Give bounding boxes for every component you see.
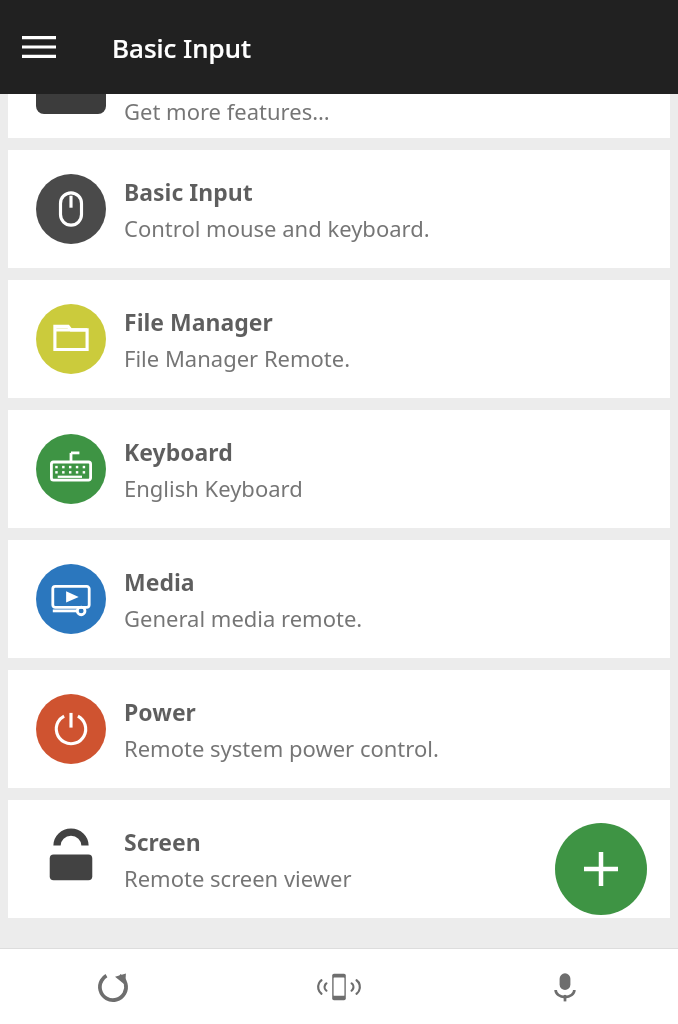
staticText: Screen bbox=[124, 826, 201, 857]
staticText: Power bbox=[124, 696, 196, 727]
button[interactable]: Screen bbox=[8, 800, 670, 918]
staticText: Basic Input bbox=[124, 176, 253, 207]
button[interactable]: Menu bbox=[8, 16, 70, 78]
button[interactable]: Find device bbox=[226, 949, 452, 1024]
staticText: Remote screen viewer bbox=[124, 863, 352, 893]
button[interactable]: Voice bbox=[452, 949, 678, 1024]
staticText: Remote system power control. bbox=[124, 733, 439, 763]
button[interactable]: Power bbox=[8, 670, 670, 788]
staticText: Control mouse and keyboard. bbox=[124, 213, 430, 243]
staticText: Basic Input bbox=[112, 30, 251, 65]
button[interactable]: Basic Input bbox=[8, 150, 670, 268]
button[interactable]: Get more features… bbox=[8, 94, 670, 138]
staticText: Get more features… bbox=[124, 96, 330, 126]
staticText: File Manager bbox=[124, 306, 273, 337]
staticText: Keyboard bbox=[124, 436, 233, 467]
staticText: File Manager Remote. bbox=[124, 343, 351, 373]
staticText: Media bbox=[124, 566, 195, 597]
button[interactable]: Refresh bbox=[0, 949, 226, 1024]
staticText: General media remote. bbox=[124, 603, 363, 633]
staticText: English Keyboard bbox=[124, 473, 303, 503]
button[interactable]: File Manager bbox=[8, 280, 670, 398]
button[interactable]: Keyboard bbox=[8, 410, 670, 528]
button[interactable]: Media bbox=[8, 540, 670, 658]
button[interactable]: Add bbox=[555, 823, 647, 915]
